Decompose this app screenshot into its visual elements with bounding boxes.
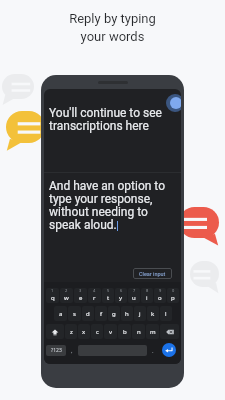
staticText: 6 (120, 288, 123, 293)
button[interactable]: b (118, 324, 131, 339)
button[interactable]: 8 (141, 288, 153, 303)
button[interactable]: h (121, 306, 133, 321)
button[interactable]: x (78, 324, 90, 339)
staticText: 0 (172, 288, 175, 293)
staticText: 1 (51, 288, 54, 293)
button[interactable]: Backspace (160, 324, 179, 339)
button[interactable]: k (147, 306, 159, 321)
staticText: x (82, 328, 86, 336)
button[interactable]: m (146, 324, 159, 339)
staticText: n (137, 328, 141, 336)
staticText: ?123 (51, 347, 62, 354)
button[interactable]: n (132, 324, 145, 339)
staticText: w (64, 294, 69, 302)
button[interactable]: 1 (46, 288, 59, 303)
staticText: c (96, 328, 99, 336)
button[interactable]: v (104, 324, 117, 339)
staticText: g (112, 310, 116, 318)
staticText: 7 (133, 288, 136, 293)
staticText: m (150, 328, 156, 336)
staticText: o (158, 294, 162, 302)
staticText: l (165, 310, 167, 318)
button[interactable]: 6 (115, 288, 127, 303)
button[interactable]: 3 (74, 288, 87, 303)
button[interactable]: 5 (102, 288, 114, 303)
button[interactable]: Clear input (133, 268, 172, 279)
button[interactable]: c (91, 324, 103, 339)
staticText: v (109, 328, 113, 336)
staticText: b (123, 328, 127, 336)
staticText: p (171, 294, 175, 302)
button[interactable]: 4 (88, 288, 101, 303)
button[interactable]: a (54, 306, 67, 321)
staticText: transcriptions here (49, 119, 149, 133)
staticText: 2 (65, 288, 68, 293)
button[interactable]: l (160, 306, 172, 321)
staticText: 8 (146, 288, 149, 293)
staticText: s (73, 310, 76, 318)
staticText: i (146, 294, 148, 302)
staticText: type your response, (49, 192, 153, 206)
button[interactable]: Send (159, 342, 179, 358)
staticText: e (79, 294, 83, 302)
button[interactable]: s (68, 306, 81, 321)
staticText: u (132, 294, 136, 302)
button[interactable]: f (95, 306, 107, 321)
staticText: speak aloud. (49, 218, 117, 232)
button[interactable]: Shift (46, 324, 64, 339)
staticText: q (51, 294, 55, 302)
button[interactable]: d (82, 306, 94, 321)
staticText: 3 (79, 288, 82, 293)
staticText: r (93, 294, 96, 302)
staticText: 4 (93, 288, 96, 293)
button[interactable]: j (134, 306, 146, 321)
staticText: t (107, 294, 110, 302)
staticText: 5 (107, 288, 110, 293)
staticText: Clear input (139, 271, 166, 277)
staticText: 9 (159, 288, 162, 293)
button[interactable]: 2 (60, 288, 73, 303)
button[interactable]: g (108, 306, 120, 321)
staticText: And have an option to (49, 179, 165, 193)
staticText: a (59, 310, 63, 318)
staticText: y (119, 294, 123, 302)
button[interactable]: 0 (167, 288, 179, 303)
staticText: f (100, 310, 103, 318)
staticText: . (152, 347, 154, 355)
staticText: d (86, 310, 90, 318)
staticText: Reply by typing your words (69, 11, 156, 44)
button[interactable]: z (65, 324, 77, 339)
staticText: j (139, 310, 141, 318)
button[interactable]: ?123 (46, 345, 66, 356)
staticText: k (151, 310, 155, 318)
button[interactable]: 7 (128, 288, 140, 303)
staticText: without needing to (49, 205, 148, 219)
staticText: h (125, 310, 129, 318)
staticText: You'll continue to see (49, 106, 162, 120)
button[interactable]: , (67, 345, 77, 356)
staticText: , (71, 347, 73, 355)
button[interactable]: 9 (154, 288, 166, 303)
button[interactable]: . (148, 345, 158, 356)
staticText: z (70, 328, 73, 336)
